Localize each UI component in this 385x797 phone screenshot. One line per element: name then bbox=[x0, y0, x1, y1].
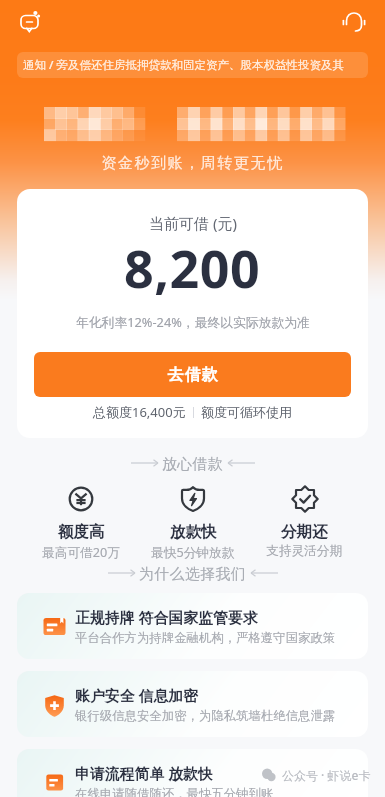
staticText: 资金秒到账，周转更无忧 bbox=[0, 154, 385, 173]
button[interactable]: 分期还 bbox=[249, 485, 360, 559]
staticText: 申请流程简单 放款快 bbox=[75, 763, 214, 783]
staticText: 额度高 bbox=[58, 522, 105, 542]
button[interactable]: 放款快 bbox=[137, 485, 249, 560]
staticText: 分期还 bbox=[281, 522, 328, 542]
staticText: 正规持牌 符合国家监管要求 bbox=[75, 607, 258, 627]
staticText: 通知 / 旁及偿还住房抵押贷款和固定资产、股本权益性投资及其 bbox=[23, 57, 344, 73]
staticText: 额度可循环使用 bbox=[201, 404, 292, 420]
staticText: 放心借款 bbox=[162, 455, 224, 471]
button[interactable]: 申请流程简单 放款快 bbox=[17, 749, 368, 797]
button[interactable]: 正规持牌 符合国家监管要求 bbox=[17, 593, 368, 659]
staticText: 银行级信息安全加密，为隐私筑墙杜绝信息泄露 bbox=[75, 708, 336, 724]
staticText: 支持灵活分期 bbox=[266, 543, 343, 559]
staticText: 年化利率12%-24%，最终以实际放款为准 bbox=[76, 313, 310, 330]
button[interactable]: Messages bbox=[12, 3, 50, 41]
staticText: 去借款 bbox=[167, 365, 218, 385]
staticText: 最高可借20万 bbox=[42, 543, 120, 560]
staticText: 8,200 bbox=[124, 232, 261, 303]
staticText: 最快5分钟放款 bbox=[151, 543, 235, 560]
staticText: 当前可借 (元) bbox=[149, 213, 237, 233]
button[interactable]: 去借款 bbox=[34, 352, 351, 397]
button[interactable]: 额度高 bbox=[25, 485, 137, 560]
staticText: 在线申请随借随还，最快五分钟到账 bbox=[75, 786, 274, 797]
staticText: 平台合作方为持牌金融机构，严格遵守国家政策 bbox=[75, 630, 336, 646]
staticText: 放款快 bbox=[170, 522, 217, 542]
button[interactable]: 账户安全 信息加密 bbox=[17, 671, 368, 737]
button[interactable]: Customer service bbox=[335, 3, 373, 41]
staticText: 账户安全 信息加密 bbox=[75, 685, 199, 705]
button[interactable]: 通知 / 旁及偿还住房抵押贷款和固定资产、股本权益性投资及其 bbox=[17, 52, 368, 78]
staticText: 公众号 · 虾说e卡 bbox=[282, 767, 371, 783]
staticText: 总额度16,400元 bbox=[93, 403, 186, 421]
staticText: 为什么选择我们 bbox=[139, 565, 247, 581]
